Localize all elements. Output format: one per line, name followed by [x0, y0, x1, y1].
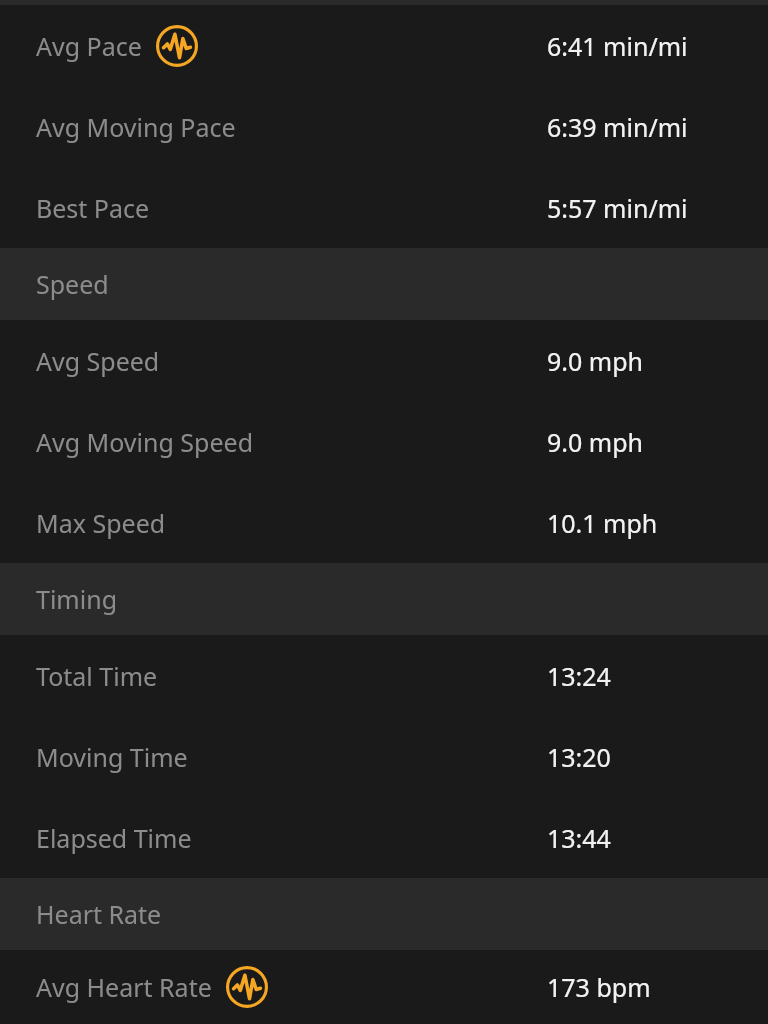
staticText: Max Speed [36, 506, 166, 540]
button[interactable]: Total Time [0, 635, 768, 716]
staticText: Elapsed Time [36, 821, 192, 855]
staticText: Avg Moving Pace [36, 110, 236, 144]
button[interactable]: Elapsed Time [0, 797, 768, 878]
button[interactable]: Speed [0, 248, 768, 320]
staticText: Total Time [36, 659, 158, 693]
staticText: Best Pace [36, 191, 150, 225]
staticText: 13:24 [547, 659, 611, 693]
staticText: 5:57 min/mi [547, 191, 688, 225]
button[interactable]: Moving Time [0, 716, 768, 797]
button[interactable]: Max Speed [0, 482, 768, 563]
button[interactable]: Avg Pace [0, 5, 768, 86]
staticText: Avg Heart Rate [36, 970, 212, 1004]
staticText: Moving Time [36, 740, 188, 774]
button[interactable]: Avg Moving Pace [0, 86, 768, 167]
button[interactable]: Avg Moving Speed [0, 401, 768, 482]
button[interactable]: Best Pace [0, 167, 768, 248]
staticText: 173 bpm [547, 970, 651, 1004]
staticText: Timing [36, 582, 118, 616]
button[interactable]: Avg Heart Rate [0, 950, 768, 1024]
staticText: 6:41 min/mi [547, 29, 688, 63]
staticText: Heart Rate [36, 897, 162, 931]
staticText: 13:20 [547, 740, 611, 774]
button[interactable]: Avg Speed [0, 320, 768, 401]
staticText: Avg Pace [36, 29, 142, 63]
staticText: 6:39 min/mi [547, 110, 688, 144]
button[interactable]: Heart Rate [0, 878, 768, 950]
other: Heart rate data [156, 25, 198, 67]
staticText: Avg Speed [36, 344, 160, 378]
staticText: 9.0 mph [547, 344, 644, 378]
staticText: 10.1 mph [547, 506, 658, 540]
other: Heart rate data [226, 966, 268, 1008]
button[interactable]: Timing [0, 563, 768, 635]
staticText: Avg Moving Speed [36, 425, 254, 459]
staticText: 9.0 mph [547, 425, 644, 459]
staticText: 13:44 [547, 821, 611, 855]
staticText: Speed [36, 267, 109, 301]
